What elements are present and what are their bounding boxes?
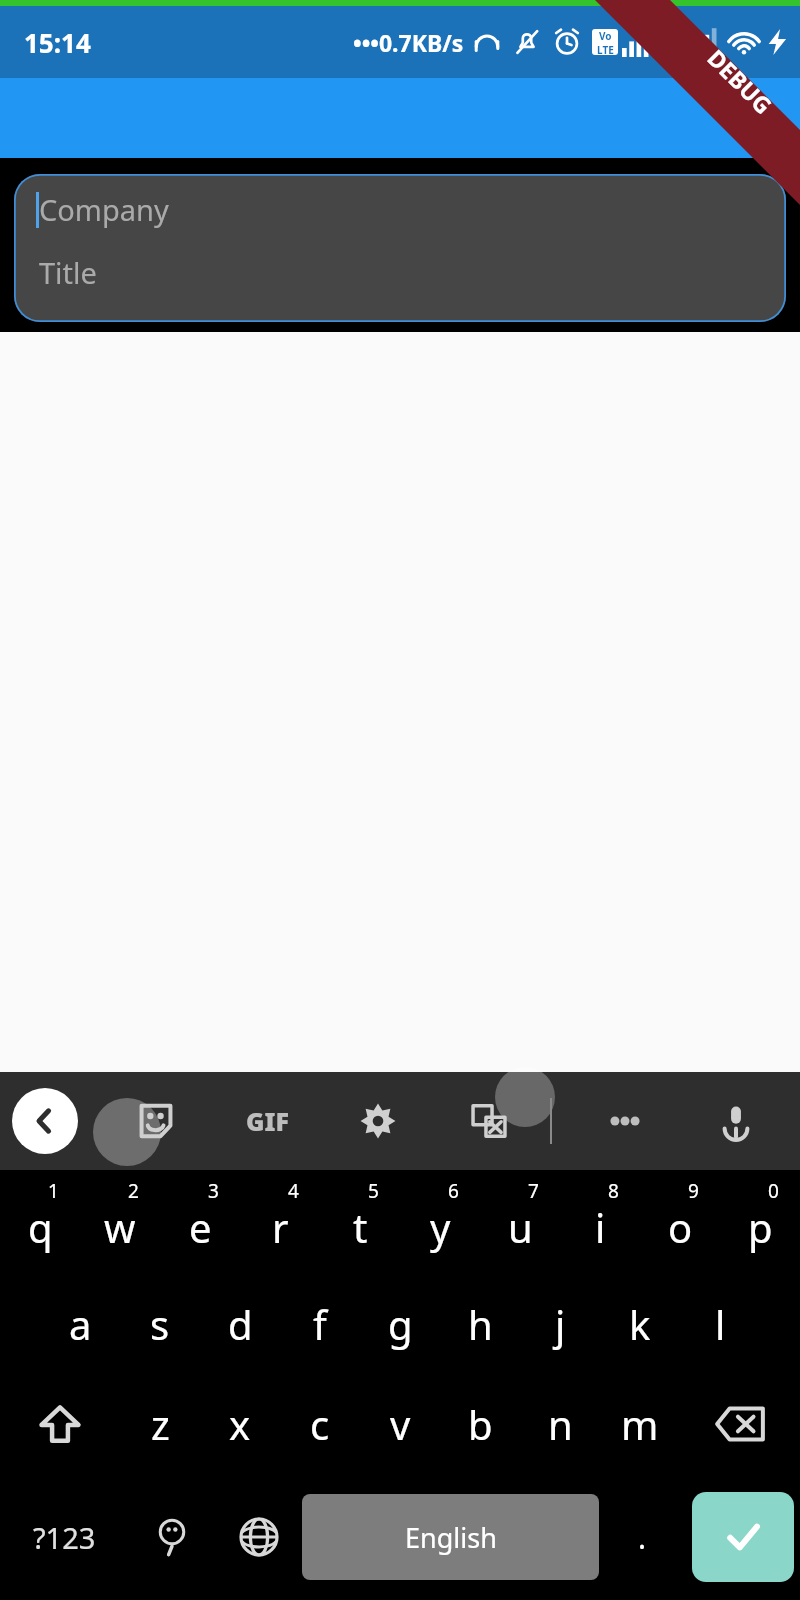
staticText: 15:14: [24, 25, 91, 60]
staticText: 3: [208, 1178, 219, 1204]
button[interactable]: m: [600, 1374, 680, 1474]
staticText: d: [228, 1297, 253, 1351]
staticText: p: [748, 1200, 773, 1254]
staticText: z: [151, 1397, 170, 1451]
staticText: g: [388, 1297, 413, 1351]
staticText: b: [468, 1397, 493, 1451]
staticText: j: [555, 1297, 566, 1351]
staticText: c: [310, 1397, 330, 1451]
staticText: 5: [368, 1178, 379, 1204]
staticText: 8: [608, 1178, 619, 1204]
button[interactable]: Change language: [215, 1474, 302, 1600]
staticText: Vo: [599, 29, 612, 43]
button[interactable]: v: [360, 1374, 440, 1474]
button[interactable]: a: [40, 1274, 120, 1374]
button[interactable]: 2: [80, 1170, 160, 1274]
button[interactable]: 5: [320, 1170, 400, 1274]
staticText: DEBUG: [701, 42, 780, 121]
staticText: e: [189, 1200, 212, 1254]
button[interactable]: 7: [480, 1170, 560, 1274]
staticText: LTE: [597, 43, 614, 55]
button[interactable]: Company: [14, 174, 786, 322]
staticText: r: [272, 1200, 289, 1254]
button[interactable]: 9: [640, 1170, 720, 1274]
staticText: 0: [768, 1178, 779, 1204]
staticText: GIF: [246, 1104, 289, 1138]
button[interactable]: ?123: [0, 1474, 128, 1600]
staticText: m: [621, 1397, 659, 1451]
button[interactable]: g: [360, 1274, 440, 1374]
button[interactable]: 8: [560, 1170, 640, 1274]
staticText: y: [430, 1200, 451, 1254]
button[interactable]: k: [600, 1274, 680, 1374]
staticText: Company: [39, 190, 169, 229]
staticText: o: [668, 1200, 693, 1254]
staticText: w: [104, 1200, 136, 1254]
button[interactable]: 3: [160, 1170, 240, 1274]
button[interactable]: h: [440, 1274, 520, 1374]
staticText: k: [629, 1297, 651, 1351]
staticText: 7: [528, 1178, 539, 1204]
staticText: h: [468, 1297, 493, 1351]
staticText: u: [508, 1200, 533, 1254]
button[interactable]: Sticker: [130, 1072, 182, 1170]
button[interactable]: Enter: [692, 1492, 794, 1582]
staticText: i: [595, 1200, 606, 1254]
button[interactable]: 4: [240, 1170, 320, 1274]
staticText: t: [353, 1200, 368, 1254]
button[interactable]: Back: [12, 1088, 78, 1154]
staticText: n: [548, 1397, 573, 1451]
button[interactable]: .: [599, 1474, 686, 1600]
button[interactable]: GIF: [236, 1090, 298, 1152]
staticText: •••0.7KB/s: [353, 27, 464, 58]
button[interactable]: English: [302, 1494, 599, 1580]
button[interactable]: Settings: [352, 1072, 404, 1170]
button[interactable]: Backspace: [680, 1374, 800, 1474]
button[interactable]: b: [440, 1374, 520, 1474]
button[interactable]: n: [520, 1374, 600, 1474]
staticText: l: [715, 1297, 726, 1351]
staticText: q: [28, 1200, 53, 1254]
staticText: 9: [688, 1178, 699, 1204]
staticText: .: [638, 1517, 647, 1558]
staticText: f: [313, 1297, 327, 1351]
button[interactable]: j: [520, 1274, 600, 1374]
button[interactable]: Shift: [0, 1374, 120, 1474]
staticText: 4: [288, 1178, 299, 1204]
button[interactable]: s: [120, 1274, 200, 1374]
button[interactable]: d: [200, 1274, 280, 1374]
button[interactable]: 1: [0, 1170, 80, 1274]
staticText: ?123: [33, 1518, 96, 1557]
staticText: 1: [48, 1178, 59, 1204]
button[interactable]: Emoji: [128, 1474, 215, 1600]
button[interactable]: l: [680, 1274, 760, 1374]
button[interactable]: 0: [720, 1170, 800, 1274]
button[interactable]: f: [280, 1274, 360, 1374]
button[interactable]: z: [120, 1374, 200, 1474]
staticText: 6: [448, 1178, 459, 1204]
staticText: 2: [128, 1178, 139, 1204]
button[interactable]: 6: [400, 1170, 480, 1274]
staticText: s: [150, 1297, 170, 1351]
button[interactable]: Voice input: [710, 1072, 762, 1170]
button[interactable]: More options: [595, 1091, 655, 1151]
staticText: a: [69, 1297, 92, 1351]
button[interactable]: x: [200, 1374, 280, 1474]
staticText: English: [405, 1519, 497, 1556]
staticText: v: [390, 1397, 411, 1451]
staticText: Title: [39, 253, 97, 292]
staticText: x: [229, 1397, 251, 1451]
button[interactable]: Translate: [463, 1072, 515, 1170]
button[interactable]: c: [280, 1374, 360, 1474]
